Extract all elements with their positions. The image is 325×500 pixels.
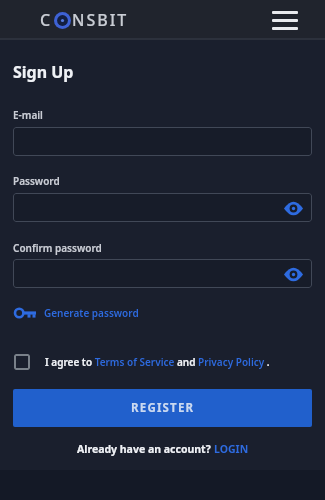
button[interactable]	[14, 354, 30, 370]
button[interactable]: LOGIN	[214, 442, 249, 456]
staticText: Password	[13, 174, 60, 188]
button[interactable]: Generate password	[13, 306, 139, 320]
button[interactable]	[272, 11, 298, 30]
button[interactable]	[282, 265, 304, 283]
button[interactable]	[282, 199, 304, 217]
staticText: Sign Up	[13, 61, 74, 83]
staticText: Already have an account?	[77, 442, 214, 456]
staticText: E-mail	[13, 108, 43, 122]
button[interactable]: REGISTER	[13, 389, 312, 427]
staticText: REGISTER	[131, 400, 195, 416]
staticText: Confirm password	[13, 241, 102, 255]
staticText: Generate password	[44, 306, 139, 320]
staticText: C	[40, 9, 53, 31]
button[interactable]	[13, 259, 312, 288]
staticText: I agree to Terms of Service and Privacy …	[45, 355, 270, 369]
button[interactable]: I agree to Terms of Service and Privacy …	[13, 354, 312, 370]
staticText: NSBIT	[72, 9, 129, 31]
button[interactable]	[13, 193, 312, 222]
button[interactable]	[13, 127, 312, 156]
button[interactable]: C	[40, 9, 129, 31]
